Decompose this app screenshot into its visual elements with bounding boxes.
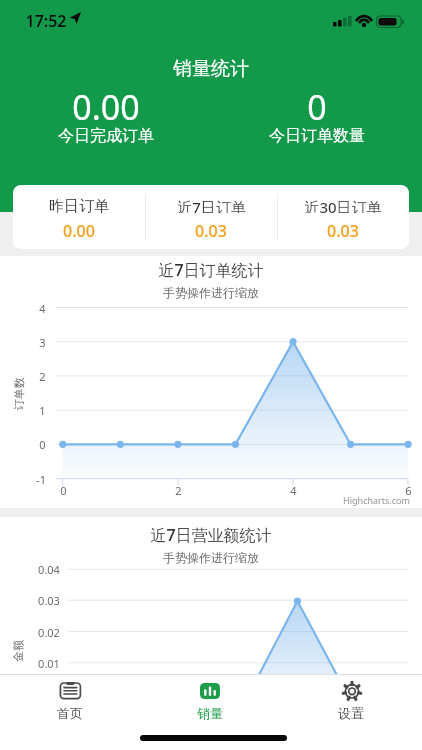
staticText: 近7日营业额统计 [150,524,272,544]
staticText: 0.02 [38,625,60,640]
staticText: 销量 [197,705,223,721]
staticText: 0.03 [327,220,359,237]
staticText: 2 [175,483,182,498]
staticText: -1 [36,472,46,487]
button[interactable]: 销量 [140,674,281,750]
staticText: 设置 [338,705,364,721]
staticText: 17:52 [25,10,67,29]
staticText: 销量统计 [173,57,249,80]
staticText: 近30日订单 [304,197,382,213]
button[interactable]: 设置 [281,674,422,750]
staticText: 0.04 [38,562,60,577]
staticText: 0 [39,437,46,452]
staticText: 4 [39,301,46,316]
staticText: 今日完成订单 [58,126,154,146]
staticText: 今日订单数量 [269,126,365,146]
staticText: 订单数 [11,377,25,410]
staticText: Highcharts.com [343,494,410,506]
staticText: 手势操作进行缩放 [163,285,259,300]
staticText: 金额 [11,640,25,662]
staticText: 手势操作进行缩放 [163,550,259,565]
staticText: 0.00 [72,84,140,122]
staticText: 3 [39,335,46,350]
staticText: 昨日订单 [49,197,109,213]
staticText: 6 [405,483,412,498]
staticText: 0.03 [195,220,227,237]
staticText: 0.03 [38,593,60,608]
staticText: 0 [60,483,67,498]
staticText: 0.01 [38,656,60,671]
staticText: 首页 [57,705,83,721]
staticText: 2 [39,369,46,384]
staticText: 0.00 [63,220,95,237]
staticText: 0 [307,84,327,122]
button[interactable]: 首页 [0,674,140,750]
staticText: 近7日订单 [177,197,246,213]
staticText: 1 [39,403,46,418]
staticText: 4 [290,483,297,498]
staticText: 近7日订单统计 [158,259,264,279]
